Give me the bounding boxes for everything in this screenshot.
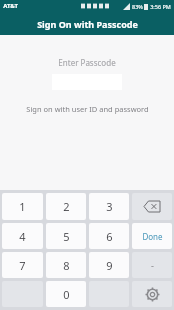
button[interactable]: 6	[89, 223, 129, 249]
button[interactable]: 1	[2, 193, 43, 220]
staticText: -	[151, 259, 154, 271]
staticText: 4	[19, 229, 26, 244]
staticText: Done	[142, 231, 163, 242]
button[interactable]: 4	[2, 223, 43, 249]
staticText: 83%	[132, 3, 143, 10]
staticText: Sign On with Passcode	[37, 18, 138, 30]
staticText: 3	[106, 199, 113, 214]
staticText: Enter Passcode	[58, 57, 116, 68]
staticText: 2	[63, 199, 70, 214]
button[interactable]: Backspace	[132, 193, 172, 220]
button[interactable]: Done	[132, 223, 172, 249]
staticText: 7	[19, 258, 26, 273]
button[interactable]: 0	[46, 281, 86, 307]
staticText: 3:56 PM	[150, 3, 171, 10]
staticText: 6	[106, 229, 113, 244]
button[interactable]: 3	[89, 193, 129, 220]
staticText: Sign on with user ID and password	[26, 104, 149, 114]
button[interactable]: 2	[46, 193, 86, 220]
button[interactable]: Sign on with user ID and password	[24, 102, 151, 116]
staticText: 5	[63, 229, 70, 244]
staticText: AT&T	[3, 2, 18, 10]
button[interactable]: 9	[89, 252, 129, 278]
staticText: 9	[106, 258, 113, 273]
button[interactable]: 5	[46, 223, 86, 249]
staticText: 1	[19, 199, 26, 214]
button[interactable]: 8	[46, 252, 86, 278]
button[interactable]: Settings	[132, 281, 172, 307]
staticText: 8	[63, 258, 70, 273]
staticText: 0	[63, 287, 70, 302]
button[interactable]: 7	[2, 252, 43, 278]
